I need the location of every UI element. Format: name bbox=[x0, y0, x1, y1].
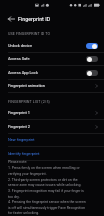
staticText: is off will simultaneously trigger Face … bbox=[8, 206, 86, 210]
staticText: Access Safe bbox=[8, 56, 30, 61]
button[interactable]: Fingerprint 1 bbox=[0, 106, 104, 120]
staticText: 2. Third-party screen protectors or dirt… bbox=[8, 178, 78, 182]
button[interactable]: Access Safe bbox=[0, 52, 104, 66]
button[interactable]: Identify fingerprint bbox=[0, 147, 104, 161]
staticText: Please note: bbox=[8, 160, 28, 164]
staticText: for faster unlocking. bbox=[8, 211, 40, 215]
staticText: sensor zone may cause issues while unloc… bbox=[8, 183, 82, 187]
button[interactable]: New fingerprint bbox=[0, 133, 104, 147]
button[interactable]: Fingerprint animation bbox=[0, 79, 104, 93]
button[interactable]: Back bbox=[4, 12, 18, 26]
staticText: Fingerprint 2 bbox=[8, 124, 30, 129]
staticText: 4. Pressing the fingerprint sensor when … bbox=[8, 200, 86, 204]
staticText: verifying your fingerprint. bbox=[8, 172, 47, 176]
staticText: FINGERPRINT LIST (2/5) bbox=[8, 100, 50, 104]
staticText: Unlock device bbox=[8, 43, 32, 48]
staticText: 1. Press firmly on the screen when enrol… bbox=[8, 166, 80, 170]
staticText: Fingerprint 1 bbox=[8, 110, 30, 115]
staticText: USE FINGERPRINT ID TO bbox=[8, 32, 50, 36]
staticText: Fingerprint ID bbox=[18, 16, 51, 22]
staticText: 3. Fingerprint recognition may fail if y… bbox=[8, 189, 84, 193]
staticText: too dry. bbox=[8, 195, 20, 199]
staticText: Access App Lock bbox=[8, 70, 38, 75]
button[interactable]: Access App Lock bbox=[0, 66, 104, 80]
staticText: Identify fingerprint bbox=[8, 151, 40, 156]
staticText: New fingerprint bbox=[8, 137, 35, 142]
button[interactable]: Unlock device bbox=[0, 39, 104, 53]
button[interactable]: Fingerprint 2 bbox=[0, 120, 104, 134]
staticText: Fingerprint animation bbox=[8, 83, 45, 88]
